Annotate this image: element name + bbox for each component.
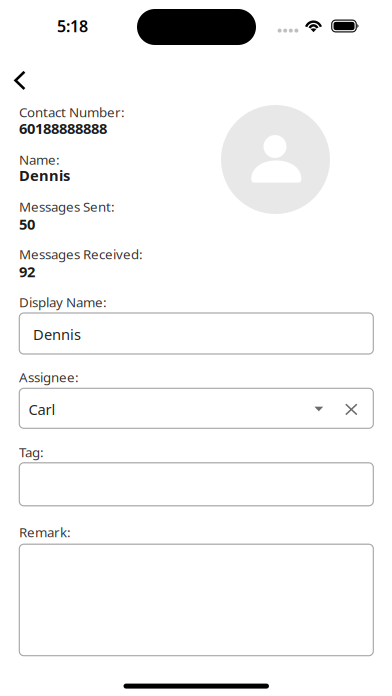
staticText: Carl [28, 399, 55, 419]
button[interactable]: Display Name [19, 313, 373, 354]
button[interactable]: Tag [19, 463, 373, 506]
button[interactable]: Show assignee options [304, 397, 332, 421]
staticText: 50 [19, 214, 35, 234]
button[interactable]: Back [3, 62, 39, 98]
staticText: Messages Received: [19, 245, 143, 263]
staticText: 60188888888 [19, 118, 107, 138]
staticText: Dennis [19, 166, 70, 185]
staticText: Name: [19, 151, 60, 168]
staticText: 5:18 [57, 15, 88, 37]
staticText: Assignee: [19, 368, 79, 386]
staticText: Display Name: [19, 293, 107, 311]
button[interactable]: Clear assignee [337, 397, 365, 421]
button[interactable]: Remark [19, 544, 373, 656]
staticText: Tag: [19, 443, 44, 461]
button[interactable]: Assignee [19, 388, 373, 428]
staticText: Messages Sent: [19, 198, 115, 215]
staticText: Contact Number: [19, 103, 125, 121]
staticText: 92 [19, 262, 35, 281]
staticText: Dennis [33, 324, 81, 344]
staticText: Remark: [19, 523, 71, 541]
